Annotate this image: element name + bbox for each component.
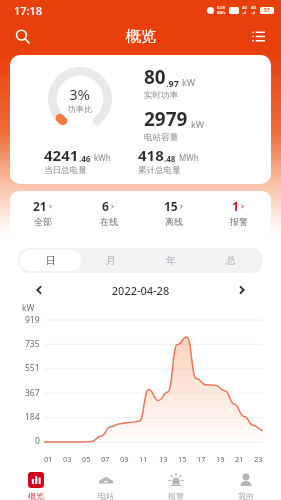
staticText: 累计总电量 bbox=[138, 165, 181, 176]
staticText: 功率比 bbox=[68, 104, 92, 114]
staticText: 11 bbox=[139, 454, 148, 464]
staticText: .97 bbox=[166, 77, 179, 89]
button[interactable]: 报警 bbox=[141, 472, 211, 500]
staticText: 0 bbox=[35, 435, 40, 447]
staticText: 551 bbox=[25, 362, 40, 374]
staticText: 07 bbox=[101, 454, 110, 464]
staticText: 23 bbox=[254, 454, 263, 464]
staticText: 电站 bbox=[98, 491, 114, 500]
button[interactable]: Next day bbox=[231, 279, 253, 301]
staticText: 21 bbox=[33, 198, 47, 214]
staticText: kWh bbox=[94, 152, 111, 163]
staticText: kW bbox=[22, 302, 35, 314]
staticText: 4G ..ıl bbox=[242, 5, 248, 15]
staticText: kW bbox=[191, 118, 205, 130]
staticText: MWh bbox=[179, 152, 199, 163]
staticText: 总 bbox=[226, 254, 236, 267]
staticText: 6 bbox=[102, 198, 109, 214]
button[interactable]: 月 bbox=[81, 250, 141, 271]
staticText: 概览 bbox=[28, 491, 44, 500]
staticText: 3% bbox=[69, 84, 91, 104]
staticText: 1 bbox=[232, 198, 239, 214]
staticText: 13 bbox=[159, 454, 168, 464]
button[interactable]: 21 bbox=[10, 198, 76, 227]
button[interactable]: 6 bbox=[76, 198, 141, 227]
staticText: 418 bbox=[138, 145, 164, 165]
staticText: 报警 bbox=[230, 216, 248, 227]
button[interactable]: 日 bbox=[20, 250, 81, 271]
staticText: 月 bbox=[106, 254, 116, 267]
staticText: 919 bbox=[25, 314, 40, 326]
staticText: 184 bbox=[25, 411, 40, 423]
button[interactable]: 3% bbox=[10, 55, 271, 184]
button[interactable]: 15 bbox=[141, 198, 206, 227]
staticText: kW bbox=[182, 76, 196, 88]
staticText: 概览 bbox=[126, 27, 156, 46]
staticText: 2979 bbox=[144, 106, 188, 132]
button[interactable]: 概览 bbox=[0, 472, 71, 500]
staticText: .48 bbox=[164, 153, 176, 164]
button[interactable]: 我的 bbox=[211, 472, 281, 500]
staticText: 367 bbox=[25, 387, 40, 399]
staticText: 离线 bbox=[165, 216, 183, 227]
button[interactable]: Previous day bbox=[28, 279, 50, 301]
staticText: 09 bbox=[120, 454, 129, 464]
staticText: .46 bbox=[79, 153, 91, 164]
staticText: 15 bbox=[164, 198, 178, 214]
staticText: 57 bbox=[264, 7, 270, 14]
staticText: 我的 bbox=[238, 491, 254, 500]
staticText: 21 bbox=[235, 454, 244, 464]
staticText: 4G ..ıl bbox=[251, 5, 257, 15]
staticText: 05 bbox=[82, 454, 91, 464]
staticText: 全部 bbox=[34, 216, 52, 227]
staticText: 15 bbox=[178, 454, 187, 464]
staticText: 实时功率 bbox=[144, 90, 178, 101]
button[interactable]: 电站 bbox=[71, 472, 141, 500]
staticText: 年 bbox=[166, 254, 176, 267]
staticText: 4241 bbox=[44, 145, 79, 165]
staticText: 0.00 KB/s bbox=[217, 5, 226, 15]
button[interactable]: Search bbox=[8, 22, 36, 50]
staticText: 80 bbox=[144, 64, 166, 90]
staticText: 01 bbox=[44, 454, 53, 464]
staticText: 电站容量 bbox=[144, 132, 178, 143]
button[interactable]: 总 bbox=[201, 250, 261, 271]
button[interactable]: 1 bbox=[206, 198, 271, 227]
staticText: 17:18 bbox=[14, 3, 43, 18]
button[interactable]: 年 bbox=[141, 250, 201, 271]
staticText: 报警 bbox=[168, 491, 184, 500]
staticText: 735 bbox=[25, 338, 40, 350]
staticText: 17 bbox=[197, 454, 206, 464]
staticText: 2022-04-28 bbox=[50, 283, 231, 298]
staticText: 当日总电量 bbox=[44, 165, 87, 176]
staticText: 在线 bbox=[100, 216, 118, 227]
button[interactable]: Menu bbox=[244, 22, 272, 50]
staticText: 19 bbox=[216, 454, 225, 464]
staticText: 日 bbox=[46, 254, 56, 267]
staticText: 03 bbox=[63, 454, 72, 464]
